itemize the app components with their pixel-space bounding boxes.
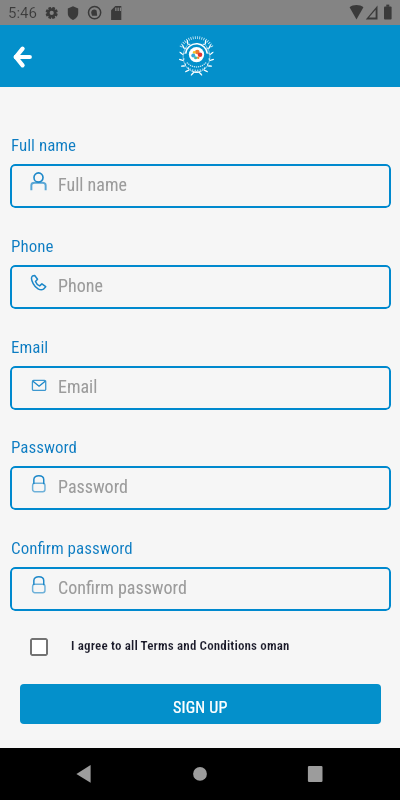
staticText: Confirm password (58, 577, 187, 598)
button[interactable]: Confirm password (10, 567, 391, 611)
staticText: SIGN UP (173, 698, 228, 717)
staticText: Email (58, 376, 98, 397)
staticText: Email (11, 337, 49, 357)
staticText: Phone (11, 236, 54, 256)
button[interactable]: SIGN UP (20, 684, 381, 724)
staticText: Full name (58, 174, 127, 195)
button[interactable]: Email (10, 366, 391, 410)
staticText: Full name (11, 135, 77, 155)
staticText: Phone (58, 275, 103, 296)
staticText: Password (11, 437, 78, 457)
staticText: Password (58, 476, 128, 497)
staticText: 5:46 (8, 4, 37, 22)
button[interactable]: I agree to all Terms and Conditions oman (24, 632, 314, 662)
button[interactable]: Full name (10, 164, 391, 208)
button[interactable]: Back (0, 35, 45, 80)
button[interactable]: Password (10, 466, 391, 510)
staticText: I agree to all Terms and Conditions oman (71, 638, 290, 653)
staticText: Confirm password (11, 538, 133, 558)
button[interactable]: Phone (10, 265, 391, 309)
